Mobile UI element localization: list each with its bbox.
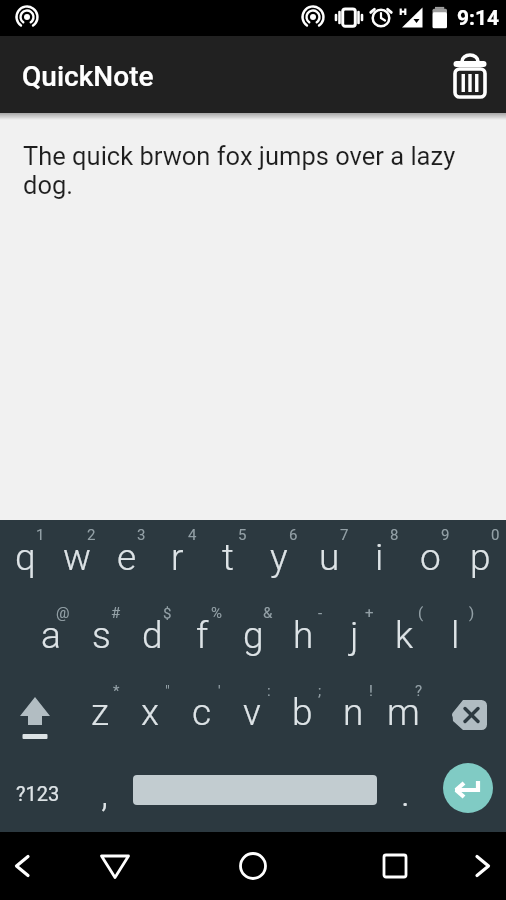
button[interactable] [405,832,506,900]
staticText: 1 [36,526,45,544]
button[interactable]: t [202,520,253,598]
staticText: j [350,614,359,657]
staticText: 9 [441,526,450,544]
button[interactable] [304,832,405,900]
staticText: l [451,614,460,657]
button[interactable]: f [177,598,228,676]
button[interactable]: u [304,520,355,598]
staticText: g [243,614,264,657]
button[interactable]: b [277,676,328,754]
button[interactable]: r [152,520,203,598]
staticText: c [192,691,212,734]
button[interactable] [434,676,506,754]
staticText: - [318,604,323,622]
button[interactable] [443,763,493,813]
staticText: QuickNote [22,60,154,93]
staticText: o [420,536,441,579]
button[interactable]: ?123 [0,754,76,832]
staticText: m [387,691,420,734]
button[interactable]: v [226,676,277,754]
staticText: 8 [390,526,399,544]
button[interactable]: h [278,598,329,676]
button[interactable]: y [253,520,304,598]
staticText: ) [469,604,475,622]
staticText: y [270,536,288,579]
staticText: # [111,604,121,622]
staticText: ; [318,682,322,700]
staticText: f [196,614,209,657]
staticText: h [293,614,314,657]
staticText: v [243,691,261,734]
staticText: " [165,682,170,700]
button[interactable]: n [328,676,379,754]
staticText: 3 [137,526,146,544]
staticText: 4 [188,526,197,544]
button[interactable]: . [379,754,431,832]
button[interactable] [102,832,203,900]
staticText: The quick brwon fox jumps over a lazy do… [23,141,456,200]
staticText: x [141,691,160,734]
button[interactable]: q [0,520,51,598]
staticText: ? [415,682,423,700]
staticText: 9:14 [457,6,500,31]
staticText: ' [218,682,221,700]
staticText: r [171,536,184,579]
button[interactable]: c [176,676,227,754]
button[interactable] [203,832,304,900]
button[interactable]: g [228,598,279,676]
button[interactable]: m [378,676,429,754]
staticText: 7 [340,526,349,544]
staticText: 5 [238,526,247,544]
staticText: d [142,614,163,657]
staticText: z [91,691,110,734]
button[interactable]: s [76,598,127,676]
button[interactable]: , [79,754,131,832]
staticText: $ [163,604,172,622]
staticText: k [395,614,414,657]
staticText: i [375,536,384,579]
button[interactable]: i [354,520,405,598]
staticText: e [117,536,137,579]
button[interactable] [0,676,70,754]
button[interactable]: j [329,598,380,676]
staticText: 2 [87,526,96,544]
staticText: n [343,691,364,734]
button[interactable]: l [430,598,481,676]
staticText: @ [56,604,70,622]
staticText: & [263,604,273,622]
staticText: ?123 [16,782,60,805]
staticText: : [267,682,271,700]
staticText: , [101,772,109,815]
staticText: s [92,614,111,657]
staticText: u [319,536,340,579]
staticText: 0 [491,526,500,544]
button[interactable]: p [455,520,506,598]
staticText: p [470,536,491,579]
staticText: t [222,536,234,579]
button[interactable] [133,775,377,805]
staticText: w [63,536,91,579]
staticText: . [401,772,410,815]
button[interactable] [440,45,500,105]
staticText: 6 [289,526,298,544]
button[interactable]: a [25,598,76,676]
staticText: q [15,536,36,579]
button[interactable]: d [127,598,178,676]
button[interactable]: z [75,676,126,754]
staticText: b [292,691,313,734]
button[interactable]: k [379,598,430,676]
button[interactable]: o [405,520,456,598]
button[interactable]: x [125,676,176,754]
button[interactable]: w [51,520,102,598]
staticText: % [211,604,222,622]
button[interactable] [0,832,102,900]
staticText: a [41,614,61,657]
staticText: + [365,604,374,622]
staticText: ! [369,682,373,700]
button[interactable]: e [101,520,152,598]
staticText: * [113,682,120,700]
staticText: ( [418,604,424,622]
